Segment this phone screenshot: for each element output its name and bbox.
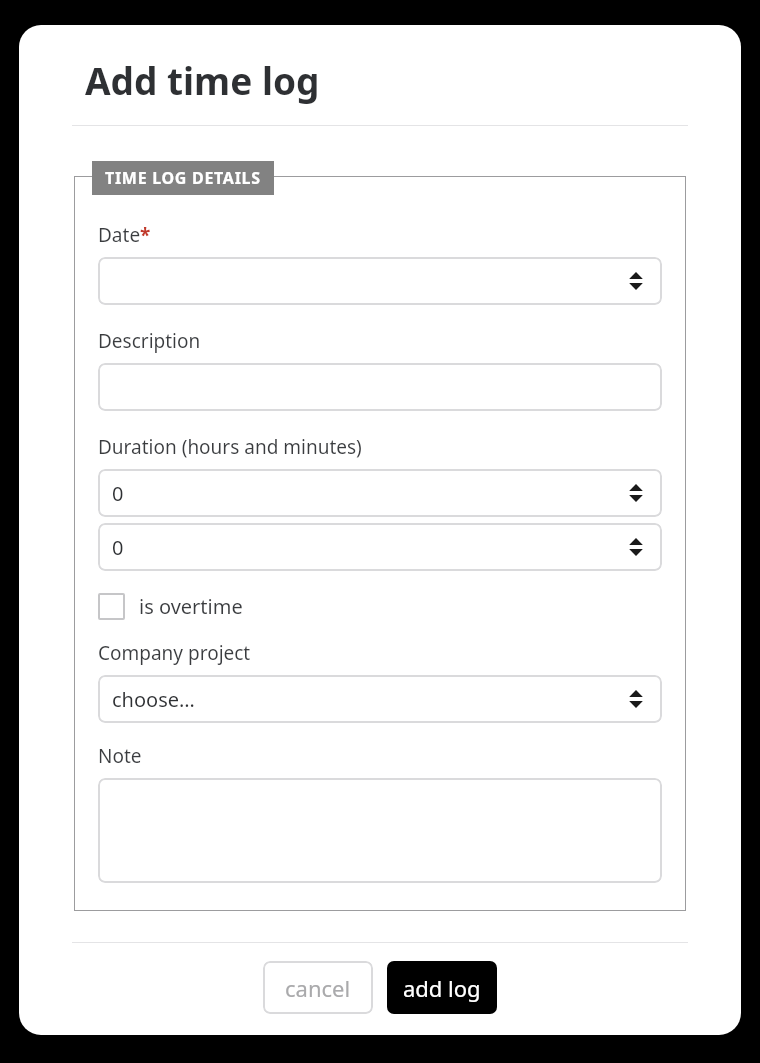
staticText: TIME LOG DETAILS [105, 167, 261, 189]
staticText: 0 [112, 480, 124, 507]
staticText: 0 [112, 534, 124, 561]
staticText: Company project [98, 640, 251, 666]
button[interactable]: Company project [98, 675, 662, 723]
button[interactable]: Note [98, 778, 662, 883]
staticText: is overtime [139, 593, 243, 620]
button[interactable]: Description [98, 363, 662, 411]
button[interactable]: cancel [263, 961, 373, 1014]
staticText: add log [403, 973, 481, 1003]
button[interactable]: is overtime [98, 593, 243, 620]
button[interactable]: add log [387, 961, 497, 1014]
staticText: Note [98, 743, 142, 769]
staticText: choose… [112, 686, 195, 713]
staticText: Description [98, 328, 201, 354]
staticText: Date* [98, 222, 151, 248]
button[interactable]: Date [98, 257, 662, 305]
staticText: cancel [285, 973, 351, 1003]
button[interactable]: Minutes [98, 523, 662, 571]
button[interactable]: Hours [98, 469, 662, 517]
staticText: Duration (hours and minutes) [98, 434, 362, 460]
staticText: Add time log [85, 55, 320, 105]
